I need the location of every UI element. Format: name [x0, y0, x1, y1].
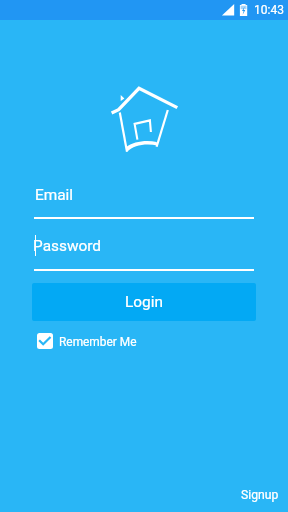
staticText: 10:43: [254, 3, 284, 17]
staticText: Login: [125, 293, 163, 311]
staticText: Remember Me: [59, 335, 137, 349]
button[interactable]: Password: [34, 234, 254, 271]
button[interactable]: Email: [34, 182, 254, 219]
button[interactable]: Login: [32, 283, 256, 321]
staticText: Signup: [241, 488, 279, 502]
staticText: Email: [35, 186, 74, 204]
staticText: Password: [33, 237, 101, 255]
button[interactable]: Remember Me: [37, 330, 137, 351]
button[interactable]: Signup: [232, 480, 288, 510]
